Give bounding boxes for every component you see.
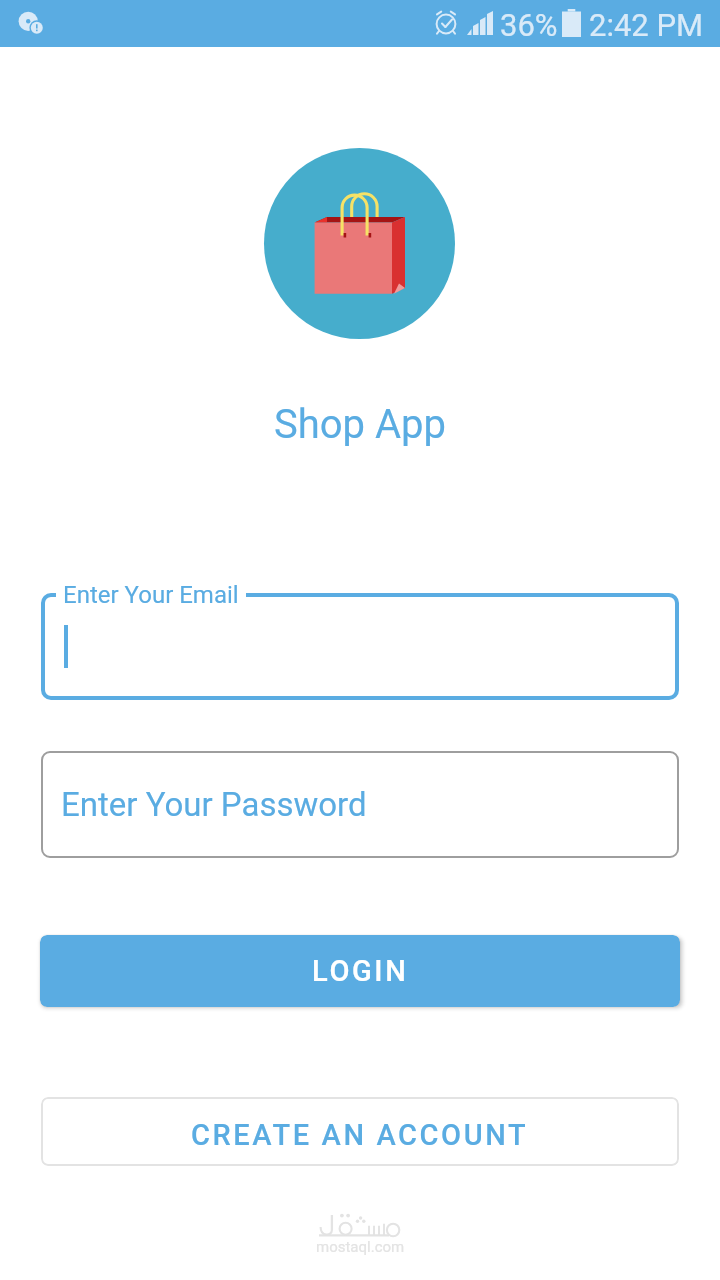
staticText: Enter Your Email	[63, 581, 239, 609]
staticText: 2:42 PM	[589, 7, 704, 43]
button[interactable]: Enter Your Password	[41, 751, 679, 858]
other: Storage warning	[15, 8, 45, 38]
button[interactable]: LOGIN	[40, 935, 680, 1007]
staticText: LOGIN	[312, 954, 409, 988]
staticText: 36%	[500, 7, 558, 43]
staticText: Shop App	[274, 401, 446, 448]
staticText: mostaql.com	[316, 1238, 405, 1256]
button[interactable]: Enter Your Email	[41, 593, 679, 700]
button[interactable]: CREATE AN ACCOUNT	[41, 1097, 679, 1166]
staticText: Enter Your Password	[61, 785, 367, 824]
staticText: CREATE AN ACCOUNT	[191, 1118, 529, 1152]
